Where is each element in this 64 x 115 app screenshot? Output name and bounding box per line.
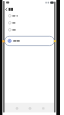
- button[interactable]: [4, 36, 54, 46]
- button[interactable]: [10, 102, 23, 113]
- button[interactable]: [36, 102, 49, 113]
- button[interactable]: [4, 6, 9, 12]
- button[interactable]: [23, 102, 36, 113]
- button[interactable]: [4, 20, 54, 27]
- button[interactable]: [4, 13, 54, 20]
- button[interactable]: [4, 27, 54, 34]
